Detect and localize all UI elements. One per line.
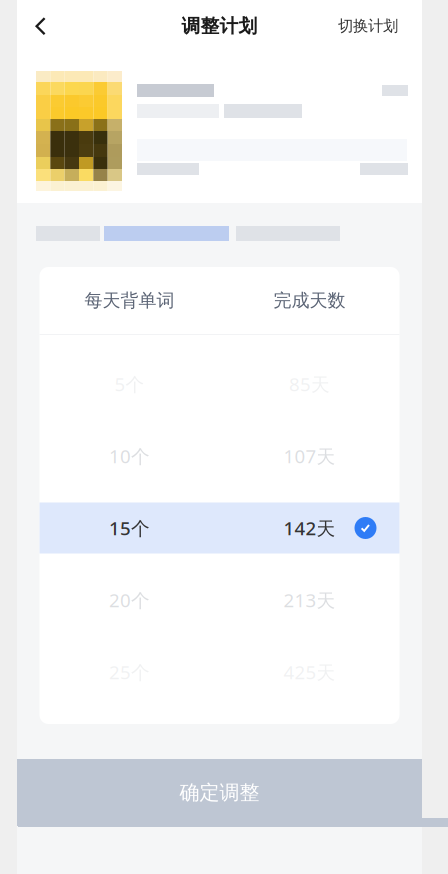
staticText: 142天 — [283, 515, 335, 541]
staticText: 完成天数 — [273, 289, 345, 312]
button[interactable]: 切换计划 — [338, 0, 422, 52]
staticText: 切换计划 — [338, 16, 398, 36]
staticText: 425天 — [283, 659, 335, 685]
button[interactable]: 10个 — [39, 420, 399, 492]
staticText: 确定调整 — [179, 780, 259, 805]
button[interactable]: 15个 — [39, 492, 399, 564]
button[interactable]: Back — [17, 0, 64, 52]
staticText: 调整计划 — [181, 14, 257, 38]
staticText: 15个 — [109, 515, 150, 541]
staticText: 25个 — [109, 659, 150, 685]
staticText: 85天 — [289, 371, 330, 397]
staticText: 20个 — [109, 587, 150, 613]
button[interactable]: 确定调整 — [17, 759, 422, 826]
staticText: 107天 — [283, 443, 335, 469]
button[interactable]: 20个 — [39, 564, 399, 636]
staticText: 10个 — [109, 443, 150, 469]
staticText: 每天背单词 — [84, 289, 174, 312]
staticText: 213天 — [283, 587, 335, 613]
staticText: 5个 — [114, 371, 144, 397]
